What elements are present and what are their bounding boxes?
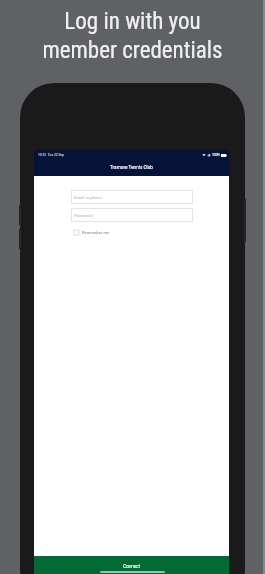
staticText: 10:16 Tue 22 Sep [38, 153, 65, 157]
staticText: Connect [123, 564, 141, 569]
button[interactable]: Password [71, 208, 193, 222]
staticText: Remember me [82, 230, 110, 235]
button[interactable]: Email or phone [71, 190, 193, 204]
button[interactable]: Connect [34, 556, 229, 574]
staticText: Password [74, 213, 93, 218]
staticText: Tramore Tennis Club [110, 165, 153, 171]
staticText: Email or phone [74, 195, 102, 200]
button[interactable]: Remember me [74, 230, 110, 235]
staticText: Log in with you [64, 8, 201, 35]
staticText: 100% [212, 153, 220, 157]
staticText: member credentials [42, 37, 223, 64]
